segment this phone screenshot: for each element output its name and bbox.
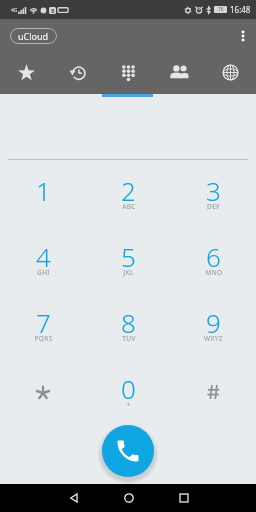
button[interactable]: 9 xyxy=(171,292,256,358)
button[interactable]: Back xyxy=(46,484,101,512)
button[interactable]: Global xyxy=(205,52,256,94)
staticText: MNO xyxy=(205,268,223,277)
button[interactable] xyxy=(171,358,256,424)
staticText: PQRS xyxy=(34,334,53,343)
staticText: GHI xyxy=(37,268,50,277)
staticText: 16:48 xyxy=(230,4,251,15)
staticText: 4 xyxy=(36,239,51,274)
staticText: 76 xyxy=(218,6,224,13)
staticText: 0 xyxy=(121,371,136,406)
button[interactable]: Home xyxy=(101,484,156,512)
staticText: + xyxy=(126,400,131,409)
button[interactable]: Dialpad xyxy=(103,52,154,94)
staticText: WXYZ xyxy=(204,334,223,343)
button[interactable]: 4 xyxy=(0,226,86,292)
staticText: 1 xyxy=(36,173,51,208)
button[interactable]: More options xyxy=(230,19,256,52)
staticText: 5 xyxy=(121,239,136,274)
button[interactable]: Recents xyxy=(52,52,103,94)
button[interactable]: Call xyxy=(102,425,154,477)
button[interactable] xyxy=(0,358,86,424)
button[interactable]: 7 xyxy=(0,292,86,358)
button[interactable]: Contacts xyxy=(154,52,205,94)
button[interactable]: 0 xyxy=(86,358,171,424)
button[interactable]: 3 xyxy=(171,160,256,226)
button[interactable]: Favorites xyxy=(0,52,52,94)
staticText: B xyxy=(51,7,55,14)
staticText: ABC xyxy=(122,202,136,211)
staticText: 7 xyxy=(36,305,51,340)
staticText: TUV xyxy=(122,334,136,343)
button[interactable]: Recent apps xyxy=(156,484,211,512)
staticText: uCloud xyxy=(18,30,49,42)
staticText: 6 xyxy=(206,239,221,274)
button[interactable]: 2 xyxy=(86,160,171,226)
button[interactable]: 8 xyxy=(86,292,171,358)
button[interactable]: uCloud xyxy=(10,28,57,44)
staticText: DEF xyxy=(207,202,220,211)
staticText: 8 xyxy=(121,305,136,340)
button[interactable]: 1 xyxy=(0,160,86,226)
staticText: 2 xyxy=(121,173,136,208)
button[interactable]: 6 xyxy=(171,226,256,292)
staticText: 4G xyxy=(11,7,18,14)
staticText: JKL xyxy=(123,268,134,277)
button[interactable]: 5 xyxy=(86,226,171,292)
staticText: 3 xyxy=(206,173,221,208)
staticText: 9 xyxy=(206,305,221,340)
